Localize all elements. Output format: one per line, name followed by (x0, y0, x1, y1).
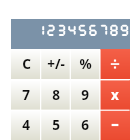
staticText: 8 (52, 86, 60, 104)
staticText: 7 (22, 86, 30, 104)
staticText: 9 (81, 86, 89, 104)
button[interactable]: Minus (100, 110, 130, 140)
button[interactable]: Seven (11, 80, 41, 110)
staticText: % (79, 55, 92, 73)
button[interactable]: Four (11, 110, 41, 140)
button[interactable]: Divide (100, 49, 130, 79)
staticText: +/- (47, 55, 65, 73)
button[interactable]: Percent (70, 49, 100, 79)
button[interactable]: Clear (11, 49, 41, 79)
staticText: 4 (22, 116, 30, 134)
staticText: x (111, 86, 119, 104)
staticText: C (22, 55, 31, 73)
button[interactable]: Six (70, 110, 100, 140)
staticText: 6 (81, 116, 89, 134)
button[interactable]: Five (41, 110, 71, 140)
button[interactable]: Nine (70, 80, 100, 110)
button[interactable]: Eight (41, 80, 71, 110)
button[interactable]: Multiply (100, 80, 130, 110)
button[interactable]: Plus minus (41, 49, 71, 79)
staticText: 5 (52, 116, 60, 134)
